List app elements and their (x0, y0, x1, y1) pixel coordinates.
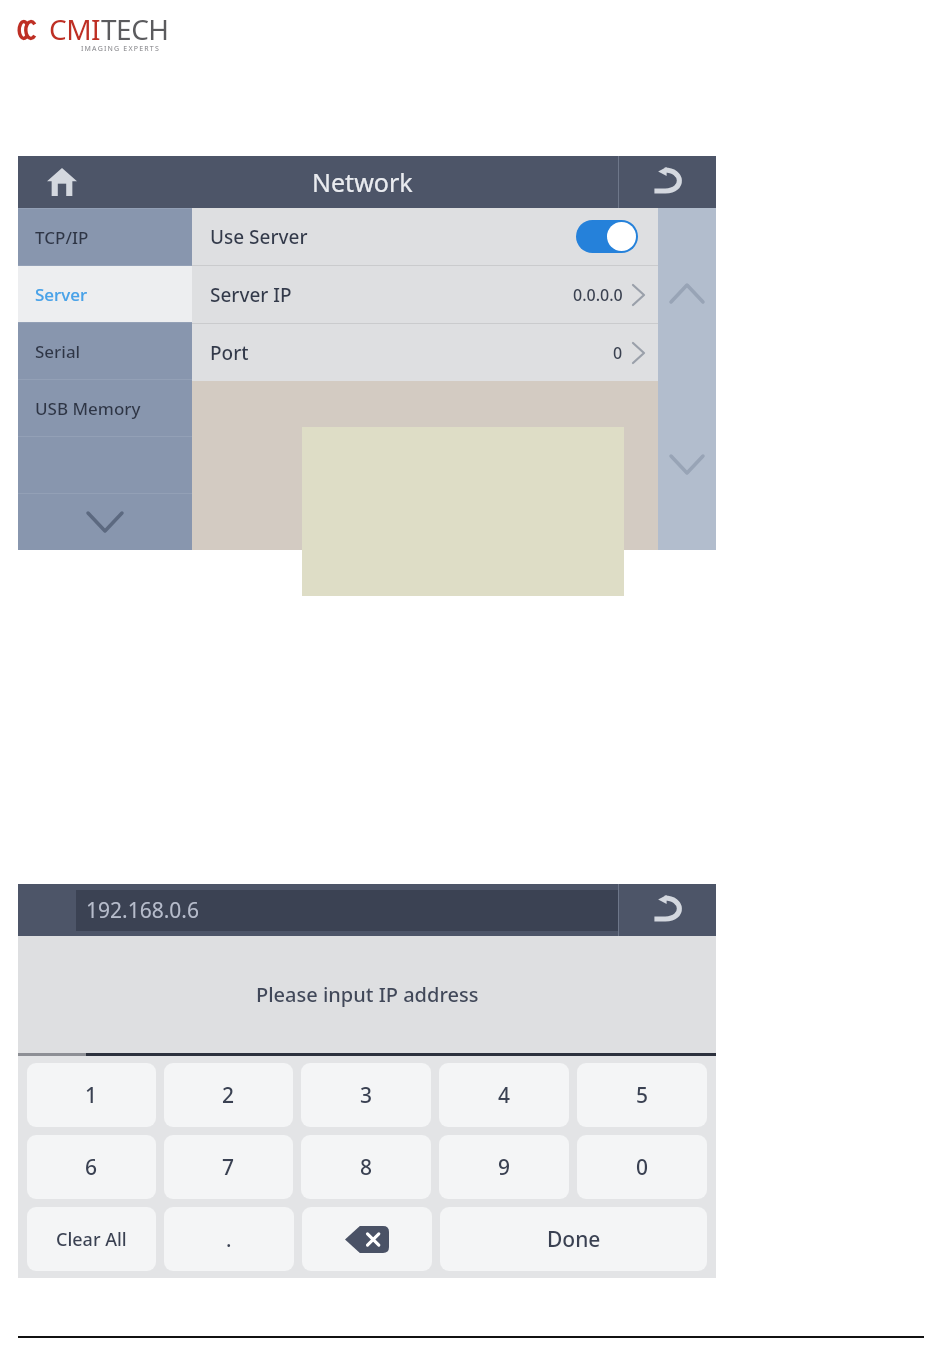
button[interactable]: 8 (301, 1135, 431, 1199)
button[interactable]: 0 (577, 1135, 707, 1199)
staticText: 9 (498, 1153, 511, 1182)
button[interactable]: USB Memory (18, 380, 192, 436)
staticText: 7 (222, 1153, 235, 1182)
staticText: 0 (636, 1153, 649, 1182)
staticText: CMI (49, 10, 101, 48)
button[interactable]: Use Server (192, 208, 658, 265)
button[interactable]: TCP/IP (18, 209, 192, 265)
staticText: 3 (360, 1081, 373, 1110)
button[interactable]: Home (18, 156, 106, 208)
staticText: TECH (101, 10, 169, 48)
staticText: 8 (360, 1153, 373, 1182)
staticText: 192.168.0.6 (86, 896, 199, 925)
staticText: Use Server (210, 224, 308, 250)
button[interactable]: Server IP (192, 266, 658, 323)
button[interactable]: 1 (27, 1063, 156, 1127)
staticText: 1 (85, 1081, 98, 1110)
staticText: Network (312, 165, 413, 199)
staticText: . (226, 1226, 232, 1253)
button[interactable]: Server (18, 266, 192, 322)
button[interactable]: Serial (18, 323, 192, 379)
button[interactable]: Port (192, 324, 658, 381)
button[interactable]: Clear All (27, 1207, 156, 1271)
button[interactable]: Back (619, 156, 716, 208)
button[interactable]: 5 (577, 1063, 707, 1127)
button[interactable]: Use Server toggle (576, 220, 638, 253)
staticText: 0 (613, 342, 623, 364)
staticText: TCP/IP (35, 226, 89, 249)
button[interactable]: Scroll menu down (18, 494, 192, 550)
button[interactable]: 9 (439, 1135, 569, 1199)
button[interactable]: 7 (164, 1135, 293, 1199)
staticText: Please input IP address (256, 981, 479, 1008)
staticText: Done (547, 1225, 601, 1254)
staticText: Port (210, 340, 249, 366)
staticText: IMAGING EXPERTS (81, 44, 160, 54)
staticText: 0.0.0.0 (573, 284, 623, 306)
button[interactable]: 3 (301, 1063, 431, 1127)
button[interactable]: . (164, 1207, 294, 1271)
button[interactable]: 2 (164, 1063, 293, 1127)
button[interactable]: Back (619, 884, 716, 936)
button[interactable]: Backspace (302, 1207, 432, 1271)
button[interactable]: Scroll down (658, 379, 716, 550)
button[interactable]: 6 (27, 1135, 156, 1199)
button[interactable]: 4 (439, 1063, 569, 1127)
button[interactable]: 192.168.0.6 (76, 890, 618, 931)
staticText: Serial (35, 340, 81, 363)
staticText: Clear All (56, 1227, 127, 1252)
staticText: 6 (85, 1153, 98, 1182)
staticText: Server IP (210, 282, 292, 308)
button[interactable]: Done (440, 1207, 707, 1271)
staticText: 5 (636, 1081, 649, 1110)
staticText: 4 (498, 1081, 511, 1110)
staticText: Server (35, 283, 88, 306)
staticText: USB Memory (35, 397, 141, 420)
button[interactable]: Scroll up (658, 208, 716, 379)
staticText: 2 (222, 1081, 235, 1110)
